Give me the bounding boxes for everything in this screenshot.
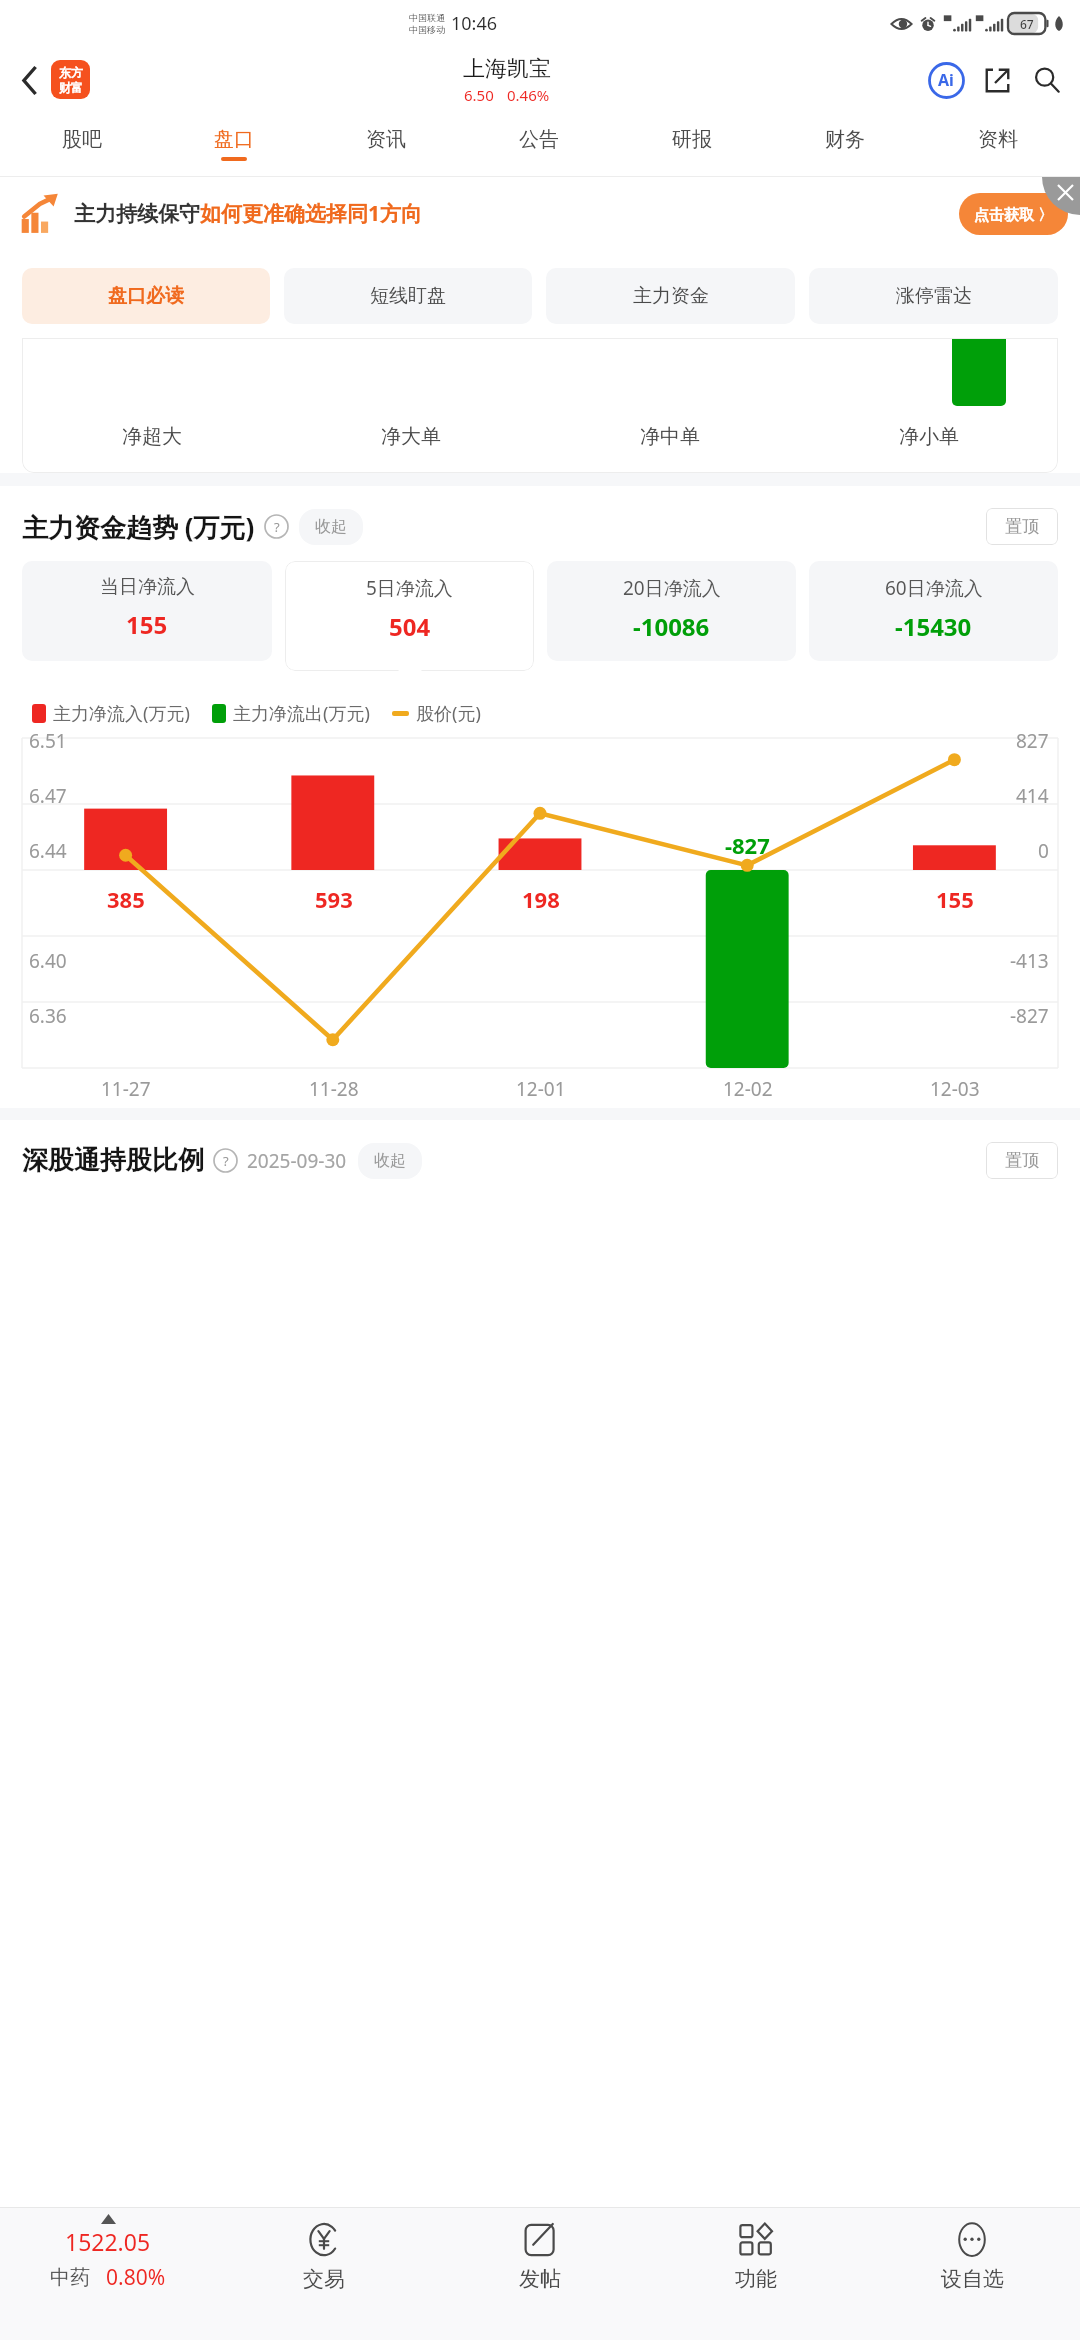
staticText: 资料 (978, 127, 1018, 152)
staticText: 827 (1016, 728, 1049, 754)
staticText: 研报 (672, 127, 712, 152)
staticText: 盘口必读 (108, 284, 184, 308)
button[interactable]: 资料 (921, 112, 1074, 176)
staticText: 净中单 (640, 424, 700, 449)
button[interactable]: 短线盯盘 (284, 268, 532, 324)
staticText: 设自选 (941, 2266, 1004, 2292)
staticText: 12-01 (516, 1076, 566, 1102)
staticText: 当日净流入 (100, 575, 195, 599)
staticText: 交易 (303, 2266, 345, 2292)
staticText: 盘口 (214, 127, 254, 152)
staticText: 置顶 (1005, 516, 1039, 537)
button[interactable]: 收起 (358, 1143, 422, 1179)
button[interactable]: 点击获取 〉 (959, 193, 1068, 235)
staticText: 主力持续保守 (74, 201, 200, 227)
button[interactable]: 1522.05 (0, 2208, 216, 2340)
staticText: 60日净流入 (885, 575, 983, 601)
staticText: 20日净流入 (623, 575, 721, 601)
staticText: 收起 (374, 1151, 406, 1171)
staticText: ? (223, 1152, 229, 1170)
button[interactable]: 交易 (216, 2208, 432, 2340)
button[interactable]: 财务 (768, 112, 921, 176)
button[interactable]: East Money (51, 60, 90, 99)
button[interactable]: 盘口必读 (22, 268, 270, 324)
button[interactable]: 资讯 (310, 112, 462, 176)
staticText: 0.80% (106, 2263, 166, 2292)
button[interactable]: 当日净流入 (22, 561, 272, 661)
staticText: 6.44 (29, 838, 67, 864)
staticText: 资讯 (366, 127, 406, 152)
staticText: 中药 (50, 2265, 90, 2290)
button[interactable]: 公告 (462, 112, 615, 176)
staticText: 中国移动 (409, 24, 445, 35)
staticText: 2025-09-30 (247, 1148, 347, 1174)
staticText: 0 (1038, 838, 1049, 864)
staticText: 收起 (315, 517, 347, 537)
staticText: 6.47 (29, 783, 67, 809)
staticText: 点击获取 〉 (974, 204, 1053, 224)
button[interactable]: Share (976, 59, 1018, 101)
staticText: 6.51 (29, 728, 67, 754)
button[interactable]: 股吧 (6, 112, 158, 176)
button[interactable]: 主力持续保守 (20, 177, 1068, 250)
staticText: -15430 (895, 610, 972, 643)
staticText: 深股通持股比例 (22, 1144, 204, 1177)
button[interactable]: 设自选 (864, 2208, 1080, 2340)
staticText: 155 (936, 884, 974, 914)
staticText: 11-28 (309, 1076, 359, 1102)
staticText: 198 (522, 884, 560, 914)
staticText: 上海凯宝 (463, 55, 551, 83)
staticText: 414 (1016, 783, 1049, 809)
staticText: 11-27 (101, 1076, 151, 1102)
staticText: 6.40 (29, 948, 67, 974)
staticText: 股价(元) (416, 701, 481, 726)
staticText: 如何更准确选择同1方向 (200, 199, 423, 228)
staticText: 短线盯盘 (370, 284, 446, 308)
staticText: 0.46% (507, 85, 550, 105)
button[interactable]: 上海凯宝 (463, 55, 551, 105)
button[interactable]: 60日净流入 (809, 561, 1058, 661)
button[interactable]: 发帖 (432, 2208, 648, 2340)
staticText: -10086 (633, 610, 710, 643)
staticText: 发帖 (519, 2266, 561, 2292)
staticText: 主力资金趋势 (万元) (22, 509, 255, 545)
staticText: 置顶 (1005, 1150, 1039, 1171)
staticText: 主力资金 (633, 284, 709, 308)
staticText: 1522.05 (65, 2226, 151, 2257)
button[interactable]: AI assistant (924, 58, 968, 102)
button[interactable]: 收起 (299, 509, 363, 545)
staticText: 东方 (59, 65, 83, 80)
staticText: -827 (1010, 1003, 1049, 1029)
staticText: 12-02 (723, 1076, 773, 1102)
staticText: 12-03 (930, 1076, 980, 1102)
staticText: 财务 (825, 127, 865, 152)
staticText: 67 (1020, 16, 1034, 32)
button[interactable]: 涨停雷达 (809, 268, 1058, 324)
button[interactable]: Help (213, 1148, 238, 1173)
button[interactable]: 功能 (648, 2208, 864, 2340)
staticText: 10:46 (451, 11, 498, 36)
button[interactable]: 置顶 (986, 1142, 1058, 1179)
staticText: 504 (389, 610, 431, 643)
button[interactable]: 净超大 (22, 338, 1058, 473)
button[interactable]: 主力资金 (546, 268, 795, 324)
button[interactable]: 置顶 (986, 508, 1058, 545)
button[interactable]: 研报 (615, 112, 768, 176)
staticText: 主力净流出(万元) (233, 701, 370, 726)
button[interactable]: Close ad (1042, 177, 1080, 215)
staticText: 593 (315, 884, 353, 914)
staticText: 财富 (59, 80, 83, 95)
button[interactable]: Search (1026, 59, 1068, 101)
button[interactable]: 5日净流入 (285, 561, 534, 671)
staticText: 功能 (735, 2266, 777, 2292)
button[interactable]: 20日净流入 (547, 561, 796, 661)
button[interactable]: 盘口 (158, 112, 310, 176)
staticText: Ai (938, 69, 954, 91)
staticText: 中国联通 (409, 12, 445, 23)
staticText: -827 (725, 830, 770, 860)
staticText: 净大单 (381, 424, 441, 449)
staticText: 公告 (519, 127, 559, 152)
staticText: 385 (107, 884, 145, 914)
button[interactable]: Back (12, 62, 48, 98)
button[interactable]: Help (264, 514, 289, 539)
